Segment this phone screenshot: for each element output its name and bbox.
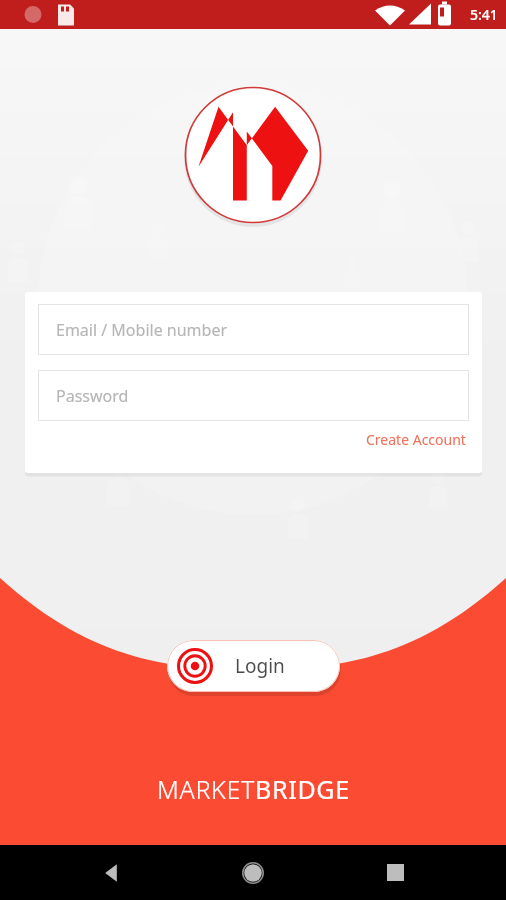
button[interactable]: Email / Mobile number bbox=[38, 304, 469, 355]
staticText: 5:41 bbox=[470, 5, 498, 24]
staticText: BRIDGE bbox=[255, 772, 350, 806]
button[interactable]: Create Account bbox=[363, 424, 469, 455]
staticText: MARKET bbox=[157, 772, 255, 806]
staticText: Password bbox=[56, 385, 129, 407]
button[interactable]: Password bbox=[38, 370, 469, 421]
button[interactable]: Login bbox=[167, 640, 340, 692]
button[interactable]: Back bbox=[82, 845, 142, 900]
staticText: Email / Mobile number bbox=[56, 319, 228, 341]
button[interactable]: Recent apps bbox=[365, 845, 425, 900]
button[interactable]: Home bbox=[223, 845, 283, 900]
staticText: Login bbox=[235, 653, 285, 679]
staticText: Create Account bbox=[366, 430, 466, 449]
